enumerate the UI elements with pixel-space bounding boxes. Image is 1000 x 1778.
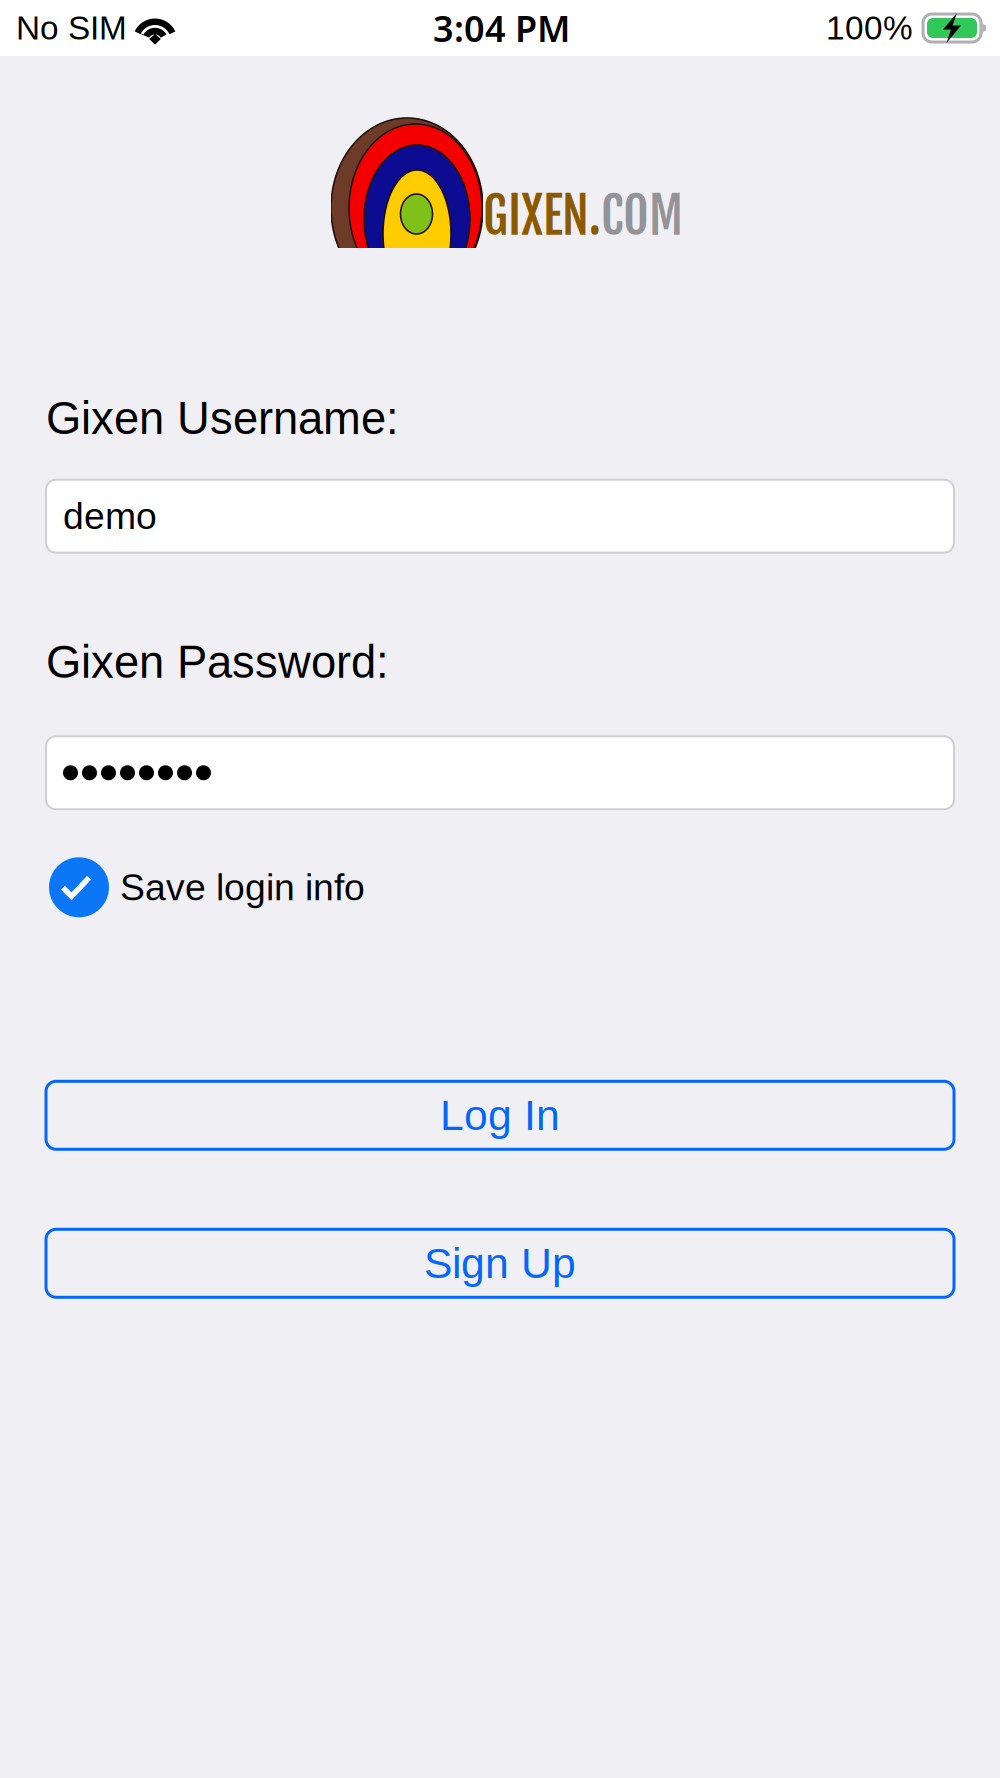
button[interactable]: Log In <box>46 1081 954 1149</box>
staticText: Log In <box>440 1091 560 1139</box>
staticText: Gixen Password: <box>46 637 389 687</box>
staticText: No SIM <box>16 9 127 47</box>
staticText: Gixen Username: <box>46 393 399 444</box>
staticText: demo <box>63 495 157 537</box>
staticText: 3:04 PM <box>433 3 570 52</box>
staticText: Sign Up <box>424 1239 576 1287</box>
staticText: 100% <box>826 9 913 47</box>
staticText: GIXEN. <box>483 185 601 247</box>
button[interactable]: Sign Up <box>46 1229 954 1297</box>
staticText: COM <box>601 185 683 247</box>
button[interactable]: Save login info <box>46 857 954 917</box>
staticText: Save login info <box>120 866 365 908</box>
